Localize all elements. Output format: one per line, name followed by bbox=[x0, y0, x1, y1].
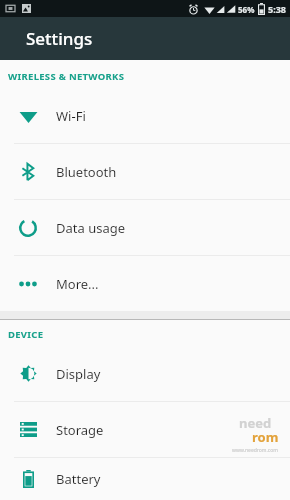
button[interactable]: Wi-Fi settings bbox=[0, 88, 290, 143]
button[interactable]: Storage settings bbox=[0, 402, 290, 457]
button[interactable]: Battery settings bbox=[0, 458, 290, 500]
button[interactable]: Bluetooth settings bbox=[0, 144, 290, 199]
staticText: Settings bbox=[26, 27, 93, 50]
staticText: Bluetooth bbox=[56, 163, 117, 181]
staticText: 5:38 bbox=[268, 3, 286, 15]
staticText: DEVICE bbox=[8, 328, 44, 341]
button[interactable]: More settings bbox=[0, 256, 290, 311]
staticText: rom bbox=[252, 428, 279, 446]
staticText: Wi-Fi bbox=[56, 107, 86, 125]
staticText: Display bbox=[56, 365, 101, 383]
staticText: More... bbox=[56, 275, 99, 293]
staticText: Storage bbox=[56, 421, 104, 439]
staticText: Battery bbox=[56, 470, 101, 488]
staticText: 56% bbox=[238, 4, 255, 15]
staticText: WIRELESS & NETWORKS bbox=[8, 70, 125, 83]
staticText: Data usage bbox=[56, 219, 126, 237]
button[interactable]: Data usage settings bbox=[0, 200, 290, 255]
button[interactable]: Display settings bbox=[0, 346, 290, 401]
staticText: www.needrom.com bbox=[232, 447, 278, 454]
staticText: need bbox=[239, 414, 272, 432]
